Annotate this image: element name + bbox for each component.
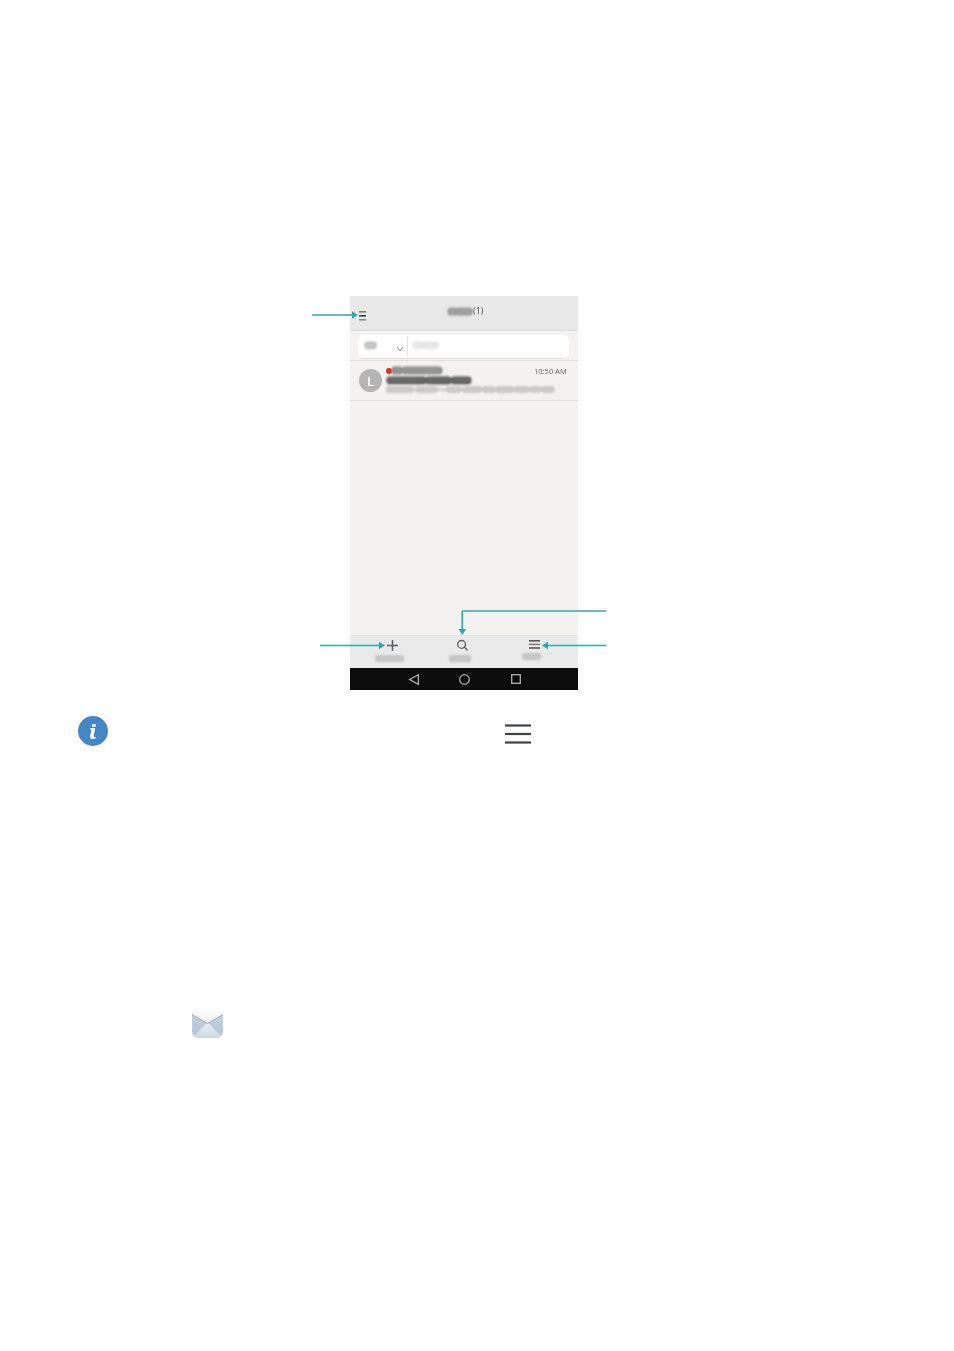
button[interactable]: Search (435, 636, 490, 668)
staticText: L (367, 372, 374, 390)
button[interactable]: Menu (490, 636, 578, 668)
staticText: i (89, 718, 97, 745)
button[interactable]: Compose (350, 636, 435, 668)
button[interactable]: Filter (358, 335, 407, 358)
button[interactable]: Home (454, 668, 475, 690)
button[interactable]: Menu (505, 723, 531, 745)
button[interactable]: L (350, 361, 578, 400)
button[interactable]: Navigation menu (351, 296, 373, 330)
button[interactable]: Recents (505, 668, 526, 690)
staticText: 10:50 AM (534, 366, 567, 376)
button[interactable]: Search (408, 335, 569, 358)
staticText: (1) (473, 304, 484, 316)
button[interactable]: Back (403, 668, 424, 690)
button[interactable]: Info (78, 716, 108, 746)
